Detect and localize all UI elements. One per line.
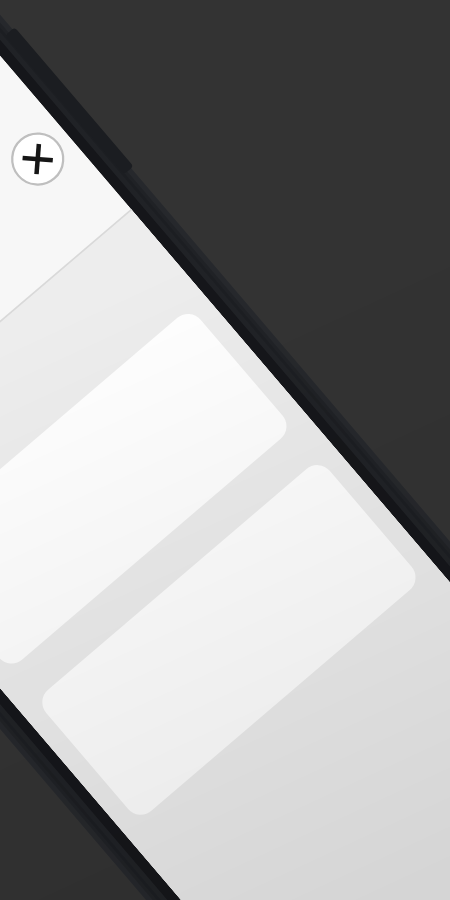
- button[interactable]: Phone showing navigation app: [0, 0, 450, 900]
